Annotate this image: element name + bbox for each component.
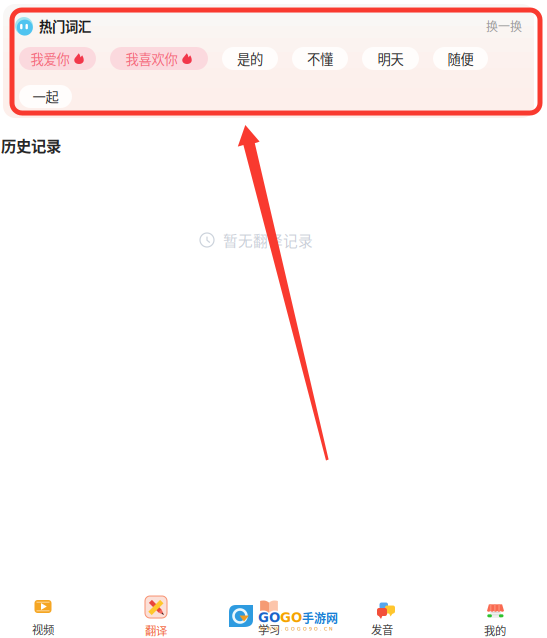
staticText: 随便 (447, 49, 473, 68)
staticText: GO (280, 610, 302, 625)
staticText: 翻译 (145, 622, 167, 638)
button[interactable]: 我喜欢你 (110, 47, 208, 70)
staticText: 暂无翻译记录 (223, 229, 313, 251)
staticText: 视频 (32, 621, 54, 637)
staticText: 学习 (258, 621, 280, 637)
staticText: 明天 (377, 49, 403, 68)
button[interactable]: 学习 (226, 596, 312, 637)
staticText: W W W . G O G O 9 O . C N (260, 626, 333, 632)
staticText: 热门词汇 (39, 16, 91, 36)
button[interactable]: 翻译 (113, 596, 199, 638)
staticText: 不懂 (307, 49, 333, 68)
button[interactable]: 我爱你 (19, 47, 96, 70)
staticText: GO (258, 610, 280, 625)
staticText: 我喜欢你 (125, 49, 177, 68)
staticText: 历史记录 (1, 134, 61, 156)
staticText: 发音 (371, 621, 393, 637)
staticText: 一起 (32, 87, 58, 106)
button[interactable]: 我的 (452, 596, 538, 638)
button[interactable]: 不懂 (292, 47, 348, 70)
staticText: 手游网 (302, 609, 338, 626)
button[interactable]: 明天 (362, 47, 419, 70)
staticText: 我的 (484, 622, 506, 638)
staticText: 换一换 (486, 17, 522, 35)
button[interactable]: 是的 (222, 47, 278, 70)
button[interactable]: 一起 (19, 85, 72, 108)
button[interactable]: 视频 (0, 596, 86, 637)
button[interactable]: 发音 (339, 596, 425, 637)
button[interactable]: 换一换 (486, 17, 522, 35)
button[interactable]: 随便 (433, 47, 488, 70)
staticText: 是的 (237, 49, 263, 68)
staticText: 我爱你 (30, 49, 69, 68)
